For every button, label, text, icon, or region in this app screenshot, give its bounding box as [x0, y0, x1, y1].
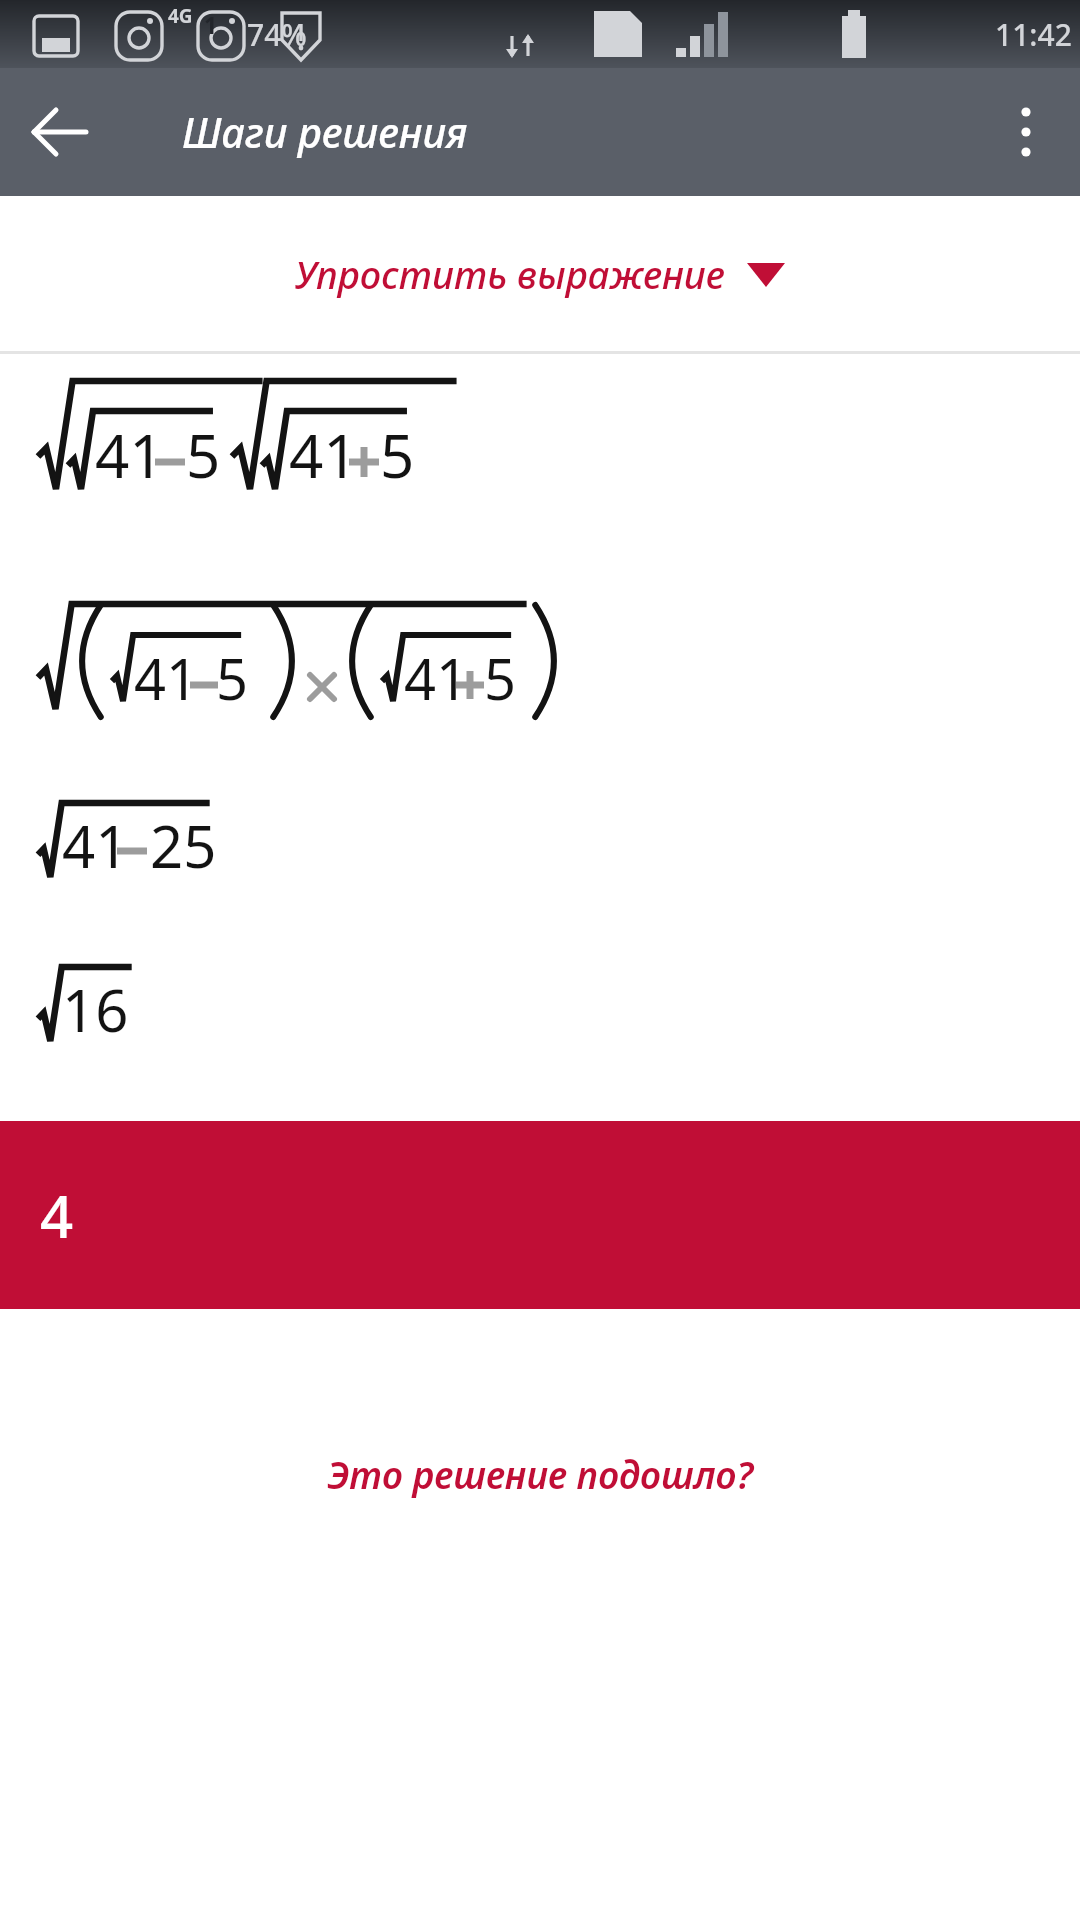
staticText: Шаги решения [182, 104, 468, 160]
button[interactable]: 4 [0, 1121, 1080, 1309]
button[interactable]: Это решение подошло? [0, 1437, 1080, 1511]
staticText: 11:42 [995, 14, 1072, 55]
staticText: 25 [150, 806, 217, 885]
staticText: 4 [40, 1176, 74, 1255]
button[interactable]: More options [994, 100, 1058, 164]
staticText: 5 [484, 640, 517, 716]
staticText: 41 [289, 414, 358, 496]
staticText: 41 [62, 806, 129, 885]
staticText: 5 [186, 414, 221, 496]
button[interactable]: Back [20, 96, 92, 168]
staticText: 74% [247, 14, 307, 55]
staticText: 1 [204, 9, 218, 40]
staticText: 41 [95, 414, 164, 496]
staticText: 16 [62, 970, 129, 1049]
staticText: 41 [134, 640, 199, 716]
staticText: 5 [216, 640, 249, 716]
staticText: 41 [404, 640, 469, 716]
staticText: 4G [168, 3, 193, 29]
button[interactable]: Упростить выражение [0, 196, 1080, 351]
staticText: Упростить выражение [295, 248, 725, 300]
staticText: 5 [380, 414, 415, 496]
